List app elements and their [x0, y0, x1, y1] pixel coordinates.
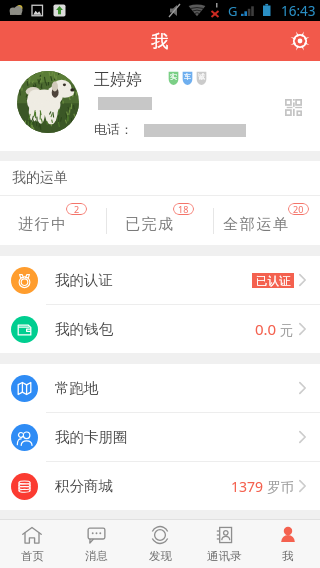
staticText: 元	[280, 322, 294, 339]
staticText: 罗币	[267, 479, 294, 496]
button[interactable]: 我的卡朋圈	[0, 413, 320, 461]
button[interactable]: 我的认证	[0, 256, 320, 304]
staticText: 诚	[198, 72, 205, 81]
button[interactable]: 已完成	[107, 196, 213, 245]
staticText: 已认证	[256, 274, 291, 288]
staticText: 我	[151, 30, 169, 52]
staticText: 车	[184, 72, 191, 81]
staticText: G	[228, 2, 238, 20]
staticText: 首页	[21, 549, 44, 563]
button[interactable]: 通讯录	[192, 520, 256, 568]
staticText: 全部运单	[223, 215, 290, 234]
staticText: 电话：	[94, 121, 133, 137]
staticText: 0.0	[255, 319, 277, 339]
staticText: 我的钱包	[55, 320, 113, 338]
staticText: 王婷婷	[94, 70, 142, 90]
staticText: 20	[293, 203, 304, 215]
button[interactable]: 消息	[64, 520, 128, 568]
staticText: 18	[178, 203, 189, 215]
staticText: 消息	[85, 549, 108, 563]
button[interactable]: 全部运单	[214, 196, 320, 245]
button[interactable]: 我	[256, 520, 320, 568]
button[interactable]: 首页	[0, 520, 64, 568]
staticText: 实	[170, 72, 177, 81]
button[interactable]: 进行中	[0, 196, 106, 245]
staticText: 发现	[149, 549, 172, 563]
button[interactable]: 我的钱包	[0, 305, 320, 353]
staticText: 1379	[231, 477, 264, 496]
staticText: 我的卡朋圈	[55, 428, 128, 446]
button[interactable]: 积分商城	[0, 462, 320, 510]
staticText: 常跑地	[55, 379, 99, 397]
staticText: 已完成	[125, 215, 175, 234]
staticText: 我的认证	[55, 271, 113, 289]
staticText: 进行中	[18, 215, 68, 234]
staticText: 我的运单	[12, 169, 68, 187]
button[interactable]: Profile photo	[17, 71, 79, 133]
staticText: 通讯录	[207, 549, 242, 563]
button[interactable]: QR code	[282, 96, 304, 118]
staticText: 积分商城	[55, 477, 113, 495]
button[interactable]: 常跑地	[0, 364, 320, 412]
button[interactable]: 发现	[128, 520, 192, 568]
button[interactable]: Settings	[280, 21, 320, 61]
staticText: 2	[74, 203, 80, 215]
staticText: 16:43	[281, 2, 316, 20]
staticText: 我	[282, 549, 294, 563]
